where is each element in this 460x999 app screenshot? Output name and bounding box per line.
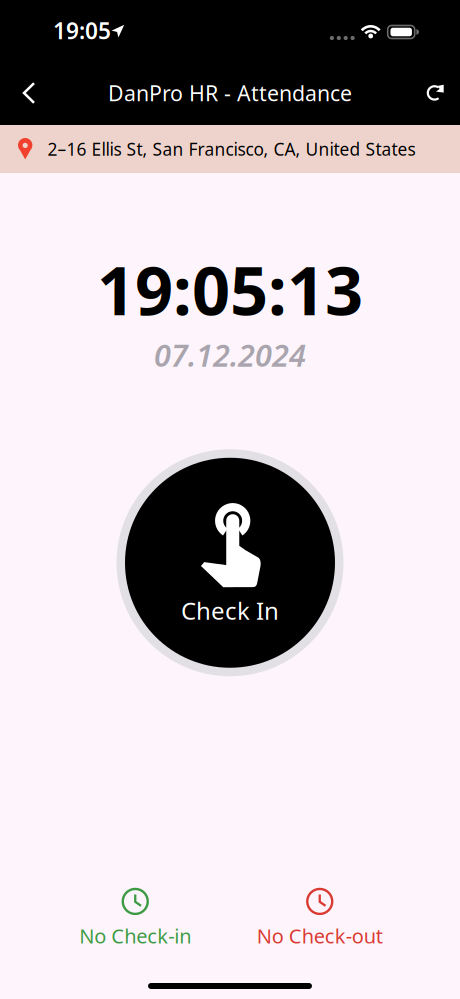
- staticText: 2–16 Ellis St, San Francisco, CA, United…: [47, 137, 415, 160]
- staticText: DanPro HR - Attendance: [108, 79, 352, 107]
- staticText: 07.12.2024: [154, 334, 306, 375]
- button[interactable]: Check In: [116, 449, 343, 676]
- button[interactable]: No Check-out: [227, 888, 412, 949]
- staticText: 19:05: [53, 15, 111, 45]
- staticText: No Check-in: [79, 922, 191, 949]
- button[interactable]: No Check-in: [43, 888, 227, 949]
- button[interactable]: Back: [7, 71, 51, 115]
- button[interactable]: Refresh: [413, 71, 457, 115]
- staticText: Check In: [181, 595, 279, 626]
- staticText: 19:05:13: [97, 245, 363, 333]
- staticText: No Check-out: [257, 922, 383, 949]
